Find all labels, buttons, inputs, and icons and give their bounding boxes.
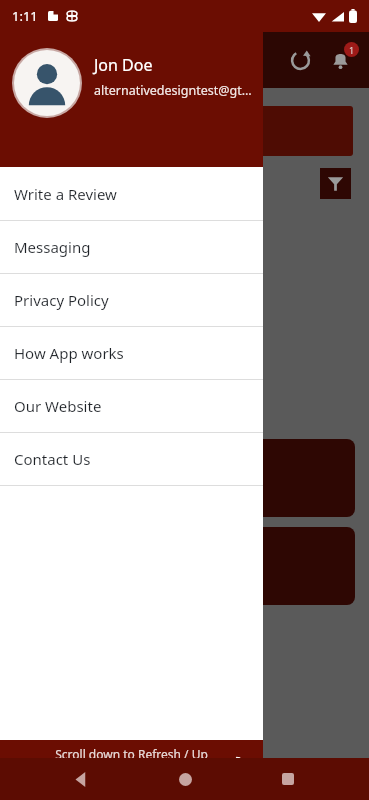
staticText: Total Rewards Paid <box>26 110 141 128</box>
staticText: How App works <box>14 343 124 363</box>
staticText: Write a Review <box>14 184 117 204</box>
button[interactable]: Share <box>16 527 355 605</box>
button[interactable]: Messaging <box>0 221 263 273</box>
staticText: alternativedesigntest@gt… <box>94 82 252 99</box>
button[interactable]: Filter <box>320 168 351 199</box>
button[interactable]: Back <box>59 758 103 800</box>
staticText: Privacy Policy <box>14 290 109 310</box>
staticText: 1 <box>349 44 355 56</box>
button[interactable]: Total Rewards Paid <box>16 106 353 156</box>
staticText: Messaging <box>14 237 91 257</box>
staticText: Jon Doe <box>94 54 153 76</box>
button[interactable]: Home <box>163 758 207 800</box>
staticText: Instructi… <box>10 50 283 70</box>
button[interactable]: Privacy Policy <box>0 274 263 326</box>
button[interactable]: Our Website <box>0 380 263 432</box>
button[interactable]: Log out <box>0 744 52 796</box>
button[interactable]: Settings <box>211 744 263 796</box>
staticText: Our Website <box>14 396 102 416</box>
staticText: Scroll down to Refresh / Up to see more … <box>52 746 211 794</box>
button[interactable]: Recents <box>266 758 310 800</box>
staticText: 1:11 <box>12 7 38 25</box>
button[interactable]: Refresh <box>283 43 317 77</box>
button[interactable]: Contact Us <box>0 433 263 485</box>
staticText: Total Referrals (2) <box>12 399 102 414</box>
button[interactable]: Write a Review <box>0 168 263 220</box>
staticText: Contact Us <box>14 449 91 469</box>
button[interactable]: Profile photo <box>14 50 80 116</box>
button[interactable]: My Wallet <box>16 439 355 517</box>
button[interactable]: Notifications <box>321 41 359 79</box>
button[interactable]: How App works <box>0 327 263 379</box>
